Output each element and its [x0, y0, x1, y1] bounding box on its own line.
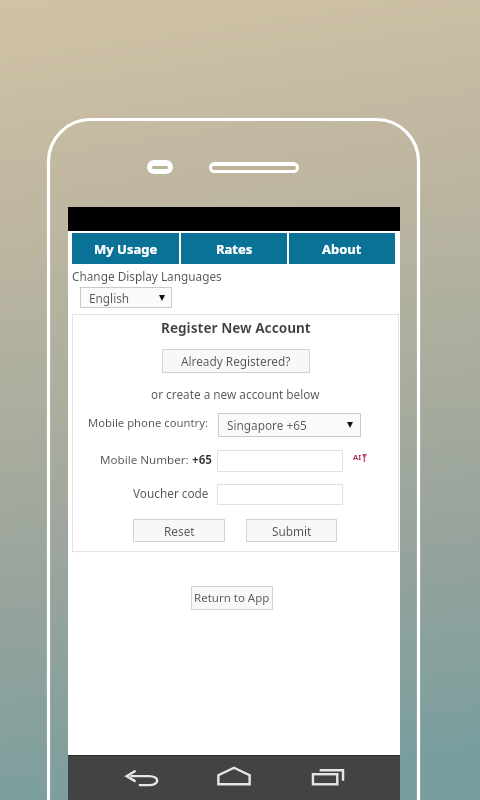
staticText: Change Display Languages: [72, 268, 222, 284]
button[interactable]: Home: [212, 765, 256, 787]
button[interactable]: Submit: [246, 519, 337, 542]
other: AI logo: [353, 452, 367, 462]
button[interactable]: Back: [120, 769, 164, 791]
button[interactable]: Return to App: [191, 586, 273, 610]
staticText: About: [322, 240, 362, 258]
staticText: Mobile phone country:: [88, 415, 208, 430]
staticText: AI: [353, 452, 362, 462]
button[interactable]: Voucher code: [217, 484, 343, 505]
button[interactable]: Singapore +65: [218, 413, 361, 437]
staticText: Return to App: [194, 590, 270, 606]
staticText: or create a new account below: [151, 386, 320, 402]
staticText: Singapore +65: [227, 417, 307, 433]
button[interactable]: My Usage: [72, 233, 179, 264]
button[interactable]: Recent apps: [308, 767, 352, 789]
staticText: English: [89, 290, 130, 306]
staticText: Rates: [216, 240, 253, 258]
staticText: Already Registered?: [181, 353, 291, 369]
button[interactable]: Mobile number: [217, 450, 343, 472]
button[interactable]: Already Registered?: [162, 349, 310, 373]
staticText: Voucher code: [133, 485, 209, 501]
staticText: Submit: [272, 523, 312, 539]
button[interactable]: Reset: [133, 519, 225, 542]
staticText: Reset: [164, 523, 195, 539]
staticText: My Usage: [94, 240, 158, 258]
staticText: Register New Account: [161, 318, 311, 337]
button[interactable]: About: [289, 233, 395, 264]
button[interactable]: Rates: [181, 233, 287, 264]
button[interactable]: English: [80, 287, 172, 308]
staticText: Mobile Number:: [100, 452, 192, 468]
staticText: +65: [192, 452, 212, 468]
